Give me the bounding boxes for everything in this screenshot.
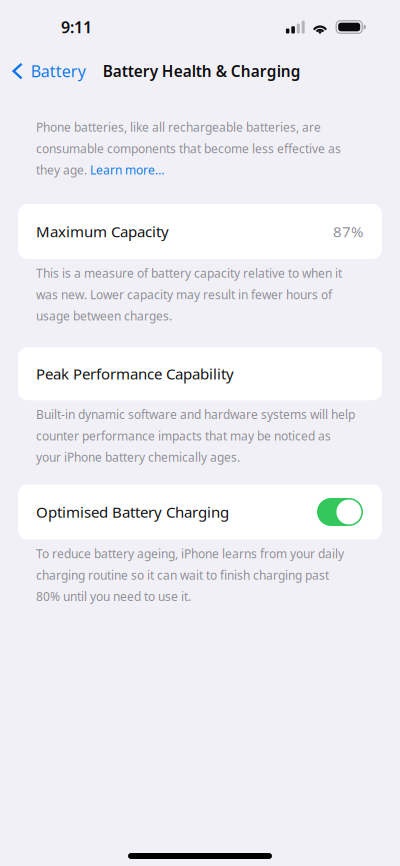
staticText: This is a measure of battery capacity re… <box>36 265 342 281</box>
staticText: Learn more… <box>90 162 164 178</box>
staticText: Built-in dynamic software and hardware s… <box>36 406 355 423</box>
button[interactable]: Battery <box>0 54 92 88</box>
staticText: Maximum Capacity <box>36 221 169 242</box>
staticText: 87% <box>333 221 363 242</box>
button[interactable]: Learn more… <box>90 162 164 178</box>
staticText: usage between charges. <box>36 308 172 324</box>
button[interactable]: Optimised Battery Charging, on <box>317 498 363 526</box>
staticText: Battery <box>31 60 86 82</box>
staticText: charging routine so it can wait to finis… <box>36 567 329 583</box>
staticText: counter performance impacts that may be … <box>36 428 331 444</box>
staticText: Phone batteries, like all rechargeable b… <box>36 119 321 135</box>
staticText: 9:11 <box>61 16 92 38</box>
staticText: Peak Performance Capability <box>36 363 234 384</box>
staticText: Optimised Battery Charging <box>36 502 229 522</box>
staticText: was new. Lower capacity may result in fe… <box>36 286 332 303</box>
staticText: 80% until you need to use it. <box>36 588 191 604</box>
staticText: consumable components that become less e… <box>36 140 341 157</box>
button[interactable]: Optimised Battery Charging <box>0 484 400 539</box>
button[interactable]: Maximum Capacity <box>0 204 400 259</box>
button[interactable]: Peak Performance Capability <box>0 347 400 400</box>
staticText: they age. <box>36 162 90 178</box>
staticText: To reduce battery ageing, iPhone learns … <box>36 545 344 562</box>
staticText: your iPhone battery chemically ages. <box>36 449 240 465</box>
staticText: Battery Health & Charging <box>103 61 301 81</box>
